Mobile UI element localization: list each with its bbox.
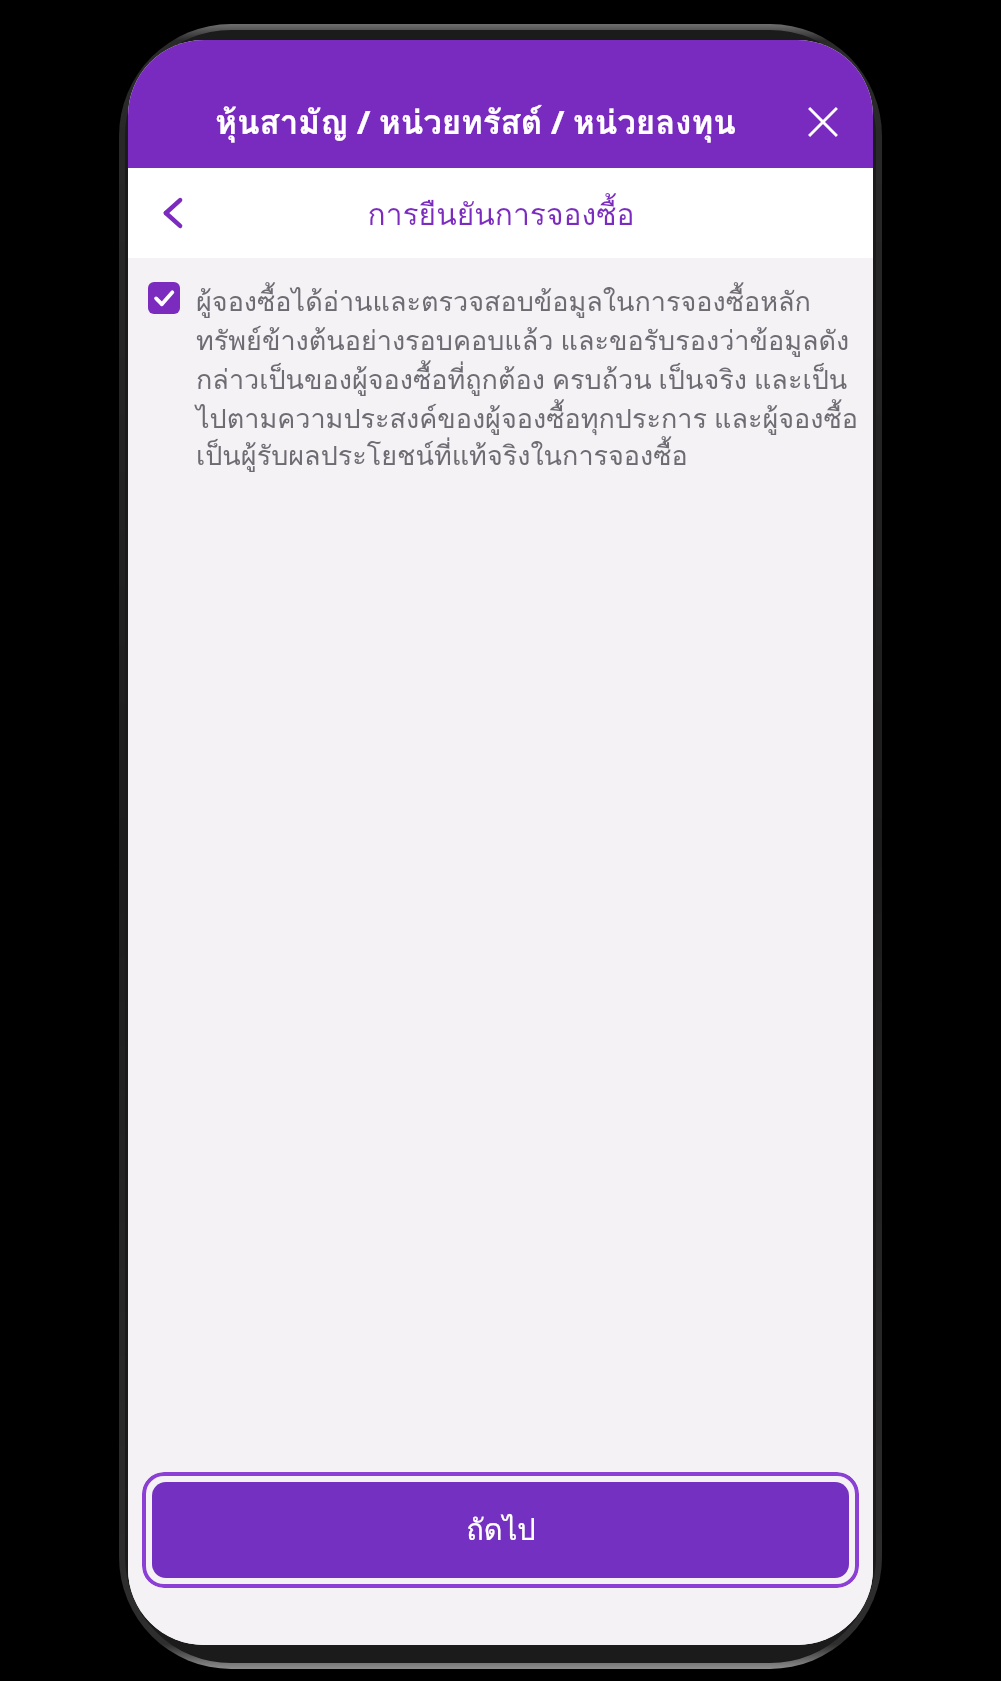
button[interactable]: ถัดไป bbox=[152, 1482, 849, 1578]
button[interactable]: ผู้จองซื้อได้อ่านและตรวจสอบข้อมูลในการจอ… bbox=[148, 280, 863, 477]
button[interactable]: Close bbox=[787, 86, 859, 158]
staticText: การยืนยันการจองซื้อ bbox=[367, 191, 635, 239]
staticText: หุ้นสามัญ / หน่วยทรัสต์ / หน่วยลงทุน bbox=[215, 96, 736, 148]
staticText: ถัดไป bbox=[466, 1507, 536, 1553]
button[interactable]: Back bbox=[138, 177, 210, 249]
staticText: ผู้จองซื้อได้อ่านและตรวจสอบข้อมูลในการจอ… bbox=[196, 280, 863, 477]
